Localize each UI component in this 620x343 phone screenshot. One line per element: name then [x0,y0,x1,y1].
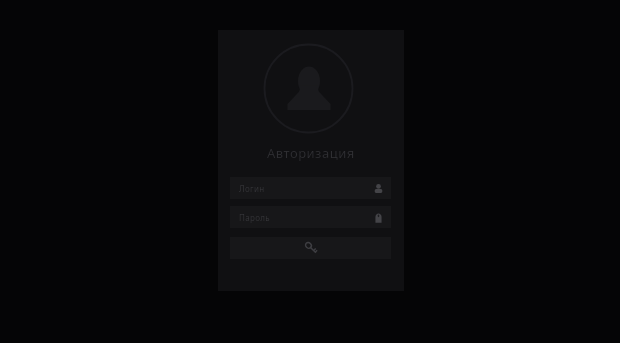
button[interactable]: Логин [230,177,391,199]
button[interactable]: Войти [230,237,391,259]
button[interactable]: Пароль [230,206,391,228]
staticText: Авторизация [267,144,355,162]
staticText: Пароль [239,212,271,223]
staticText: Логин [239,183,265,194]
